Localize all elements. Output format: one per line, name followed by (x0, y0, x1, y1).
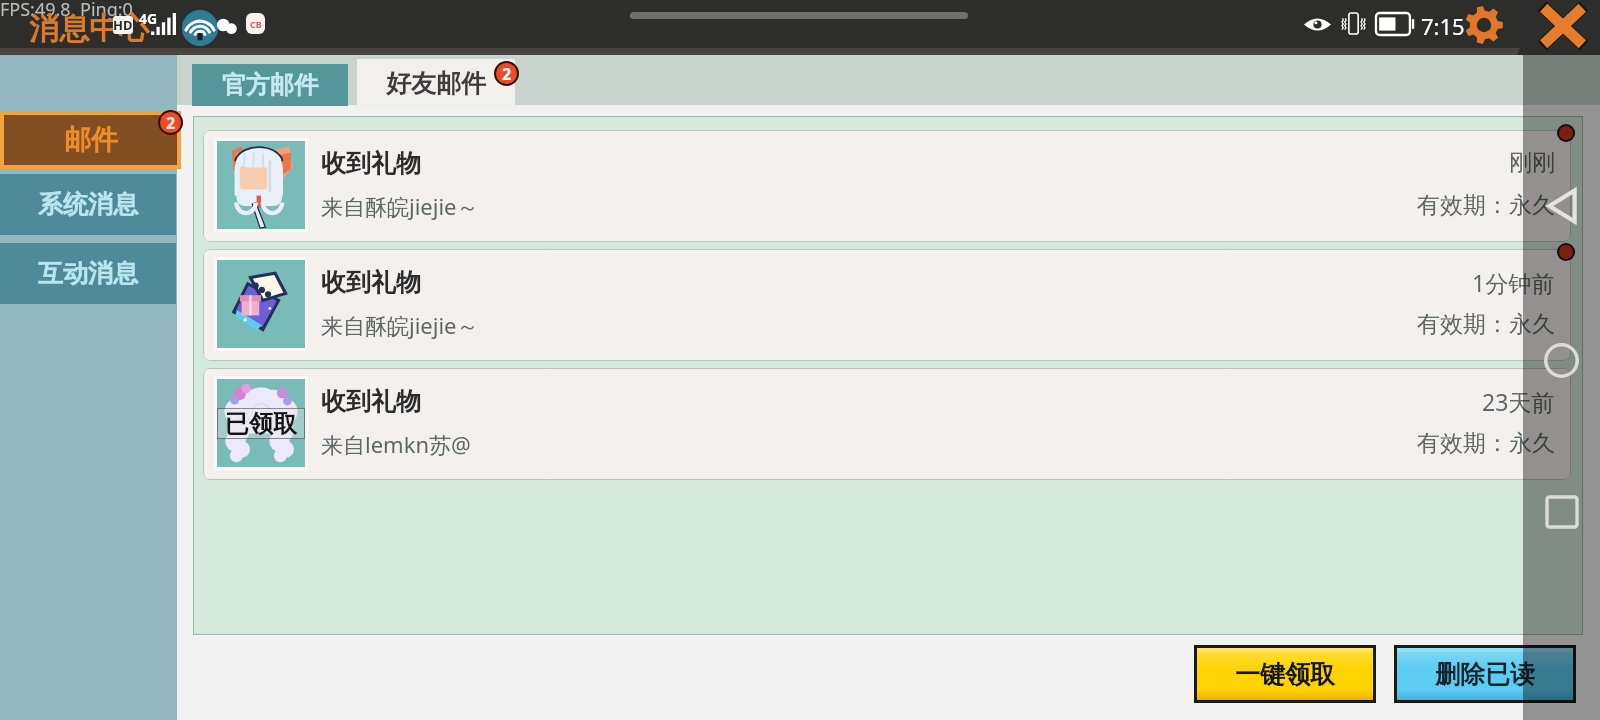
staticText: 收到礼物 (321, 267, 421, 298)
staticText: 收到礼物 (321, 148, 421, 179)
staticText: 1分钟前 (1472, 267, 1555, 298)
staticText: HD (113, 16, 133, 34)
staticText: 来自lemkn苏@ (321, 429, 471, 459)
button[interactable]: Back (1547, 188, 1577, 224)
button[interactable]: 收到礼物 (203, 130, 1571, 242)
button[interactable]: 互动消息 (0, 243, 176, 304)
button[interactable]: Close (1541, 4, 1585, 48)
button[interactable]: 收到礼物 (203, 249, 1571, 361)
staticText: 一键领取 (1235, 659, 1335, 690)
staticText: 有效期：永久 (1417, 310, 1555, 339)
staticText: 7:15 (1421, 11, 1465, 41)
button[interactable]: 删除已读 (1397, 648, 1573, 700)
staticText: 邮件 (64, 123, 118, 157)
button[interactable]: Recents (1547, 497, 1577, 527)
staticText: 来自酥皖jiejie～ (321, 310, 479, 340)
staticText: CB (250, 18, 262, 30)
button[interactable]: 好友邮件 (357, 59, 515, 107)
staticText: 收到礼物 (321, 386, 421, 417)
staticText: 2 (166, 112, 176, 133)
staticText: 2 (502, 63, 512, 84)
button[interactable]: 官方邮件 (192, 64, 348, 106)
button[interactable]: 已领取 (203, 368, 1571, 480)
button[interactable]: Home (1544, 343, 1579, 378)
staticText: 删除已读 (1435, 659, 1535, 690)
button[interactable]: 系统消息 (0, 174, 176, 235)
staticText: 好友邮件 (386, 68, 486, 99)
button[interactable]: 一键领取 (1197, 648, 1373, 700)
staticText: FPS:49.8 Ping:0 (0, 0, 133, 22)
button[interactable]: 邮件 (4, 115, 177, 165)
staticText: 消息中心 (29, 10, 149, 48)
staticText: 23天前 (1482, 386, 1555, 417)
staticText: 有效期：永久 (1417, 429, 1555, 458)
staticText: 已领取 (225, 409, 297, 439)
staticText: 来自酥皖jiejie～ (321, 191, 479, 221)
staticText: 4G (139, 9, 158, 28)
staticText: 官方邮件 (222, 70, 318, 100)
button[interactable]: Settings (1465, 6, 1503, 44)
staticText: 刚刚 (1509, 148, 1555, 177)
staticText: 有效期：永久 (1417, 191, 1555, 220)
staticText: 系统消息 (38, 189, 138, 220)
staticText: 互动消息 (38, 258, 138, 289)
